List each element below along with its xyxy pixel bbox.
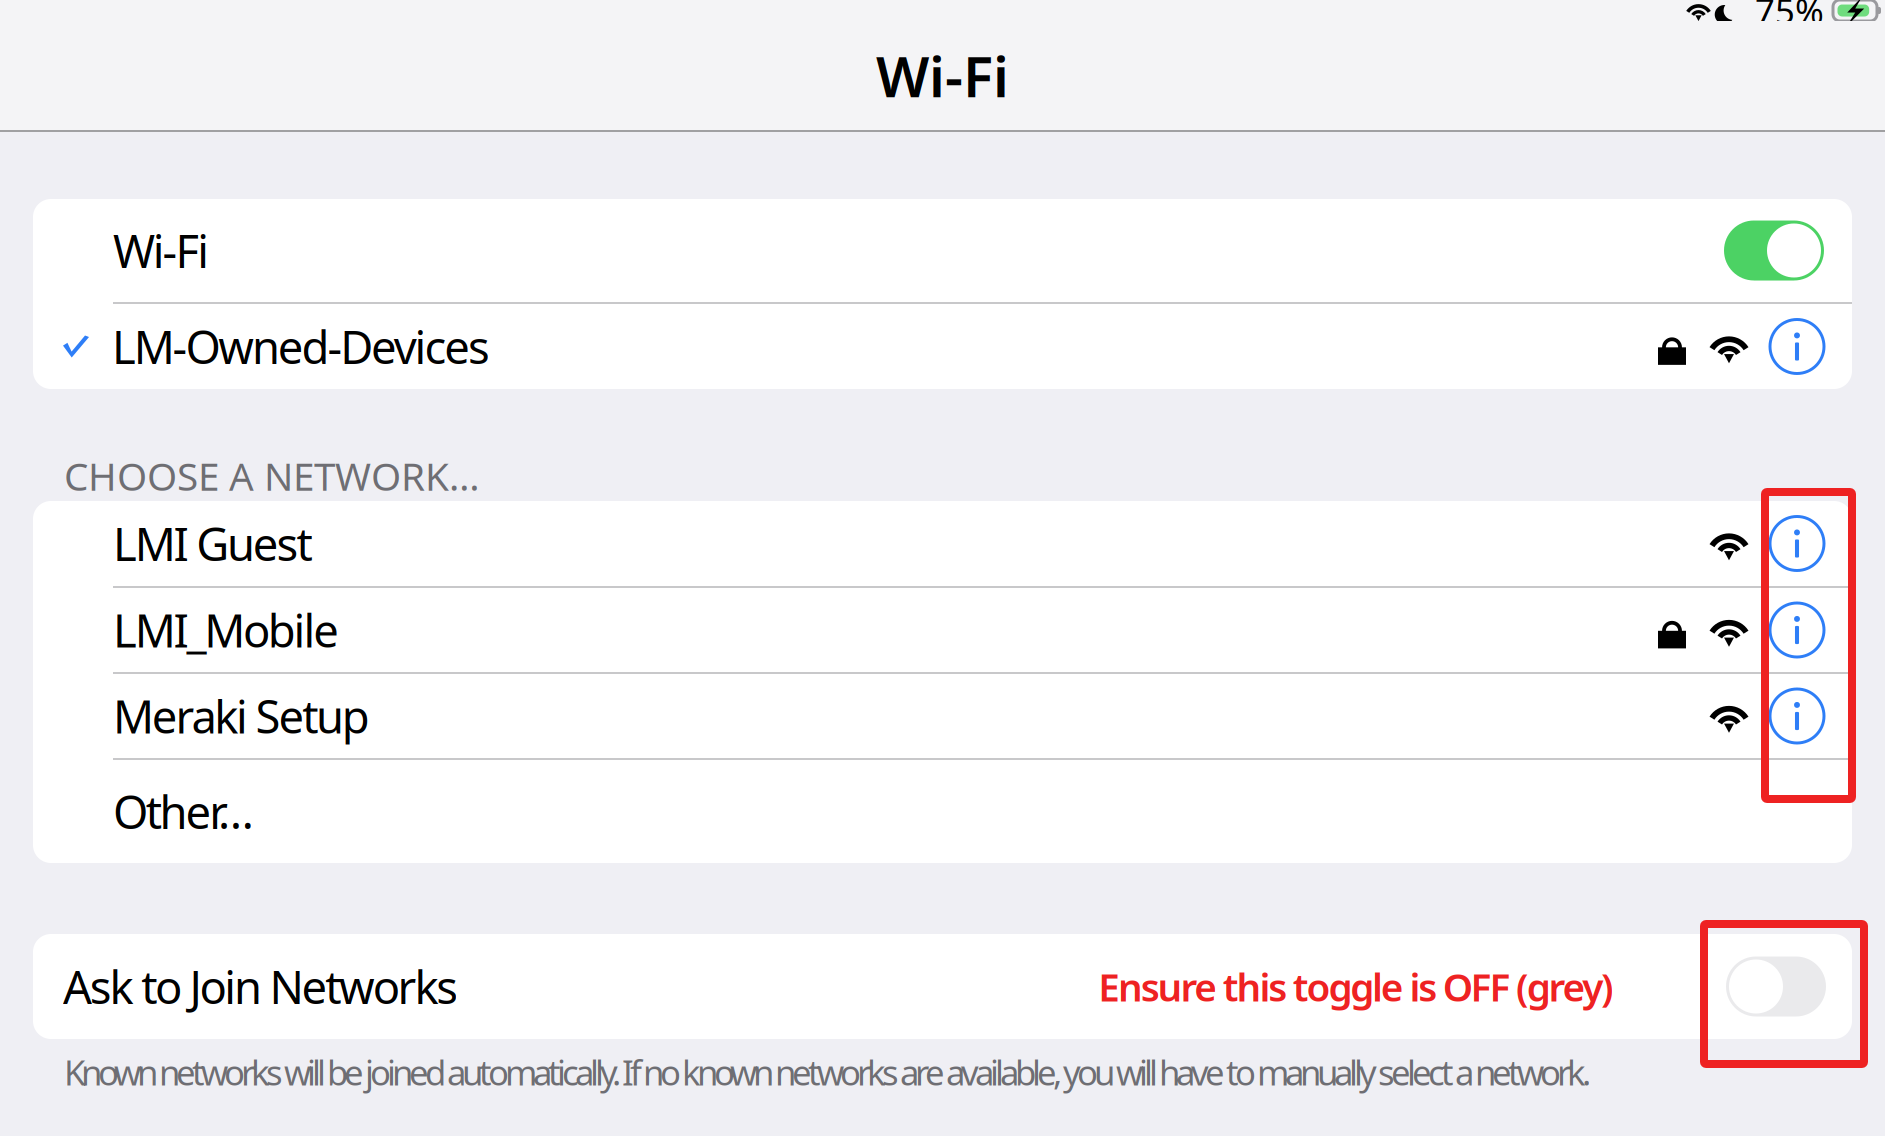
staticText: Wi-Fi (876, 38, 1009, 113)
staticText: LM-Owned-Devices (112, 316, 490, 377)
staticText: LMI_Mobile (113, 600, 339, 660)
staticText: 75% (1755, 0, 1824, 33)
button[interactable]: Other… (33, 760, 1852, 863)
button[interactable]: Ask to Join Networks (1614, 934, 1852, 1039)
staticText: Other… (113, 781, 254, 842)
staticText: Known networks will be joined automatica… (64, 1049, 1591, 1095)
staticText: Meraki Setup (113, 686, 370, 746)
button[interactable]: Meraki Setup (33, 674, 1852, 758)
button[interactable]: LM-Owned-Devices (33, 304, 1852, 389)
button[interactable]: LMI Guest (33, 501, 1852, 586)
staticText: LMI Guest (113, 513, 312, 574)
staticText: CHOOSE A NETWORK… (64, 450, 480, 501)
staticText: Ask to Join Networks (63, 956, 458, 1017)
button[interactable]: LMI_Mobile (33, 588, 1852, 672)
staticText: Ensure this toggle is OFF (grey) (1098, 961, 1614, 1012)
staticText: Wi-Fi (113, 220, 209, 281)
button[interactable]: Wi-Fi (1724, 199, 1852, 302)
